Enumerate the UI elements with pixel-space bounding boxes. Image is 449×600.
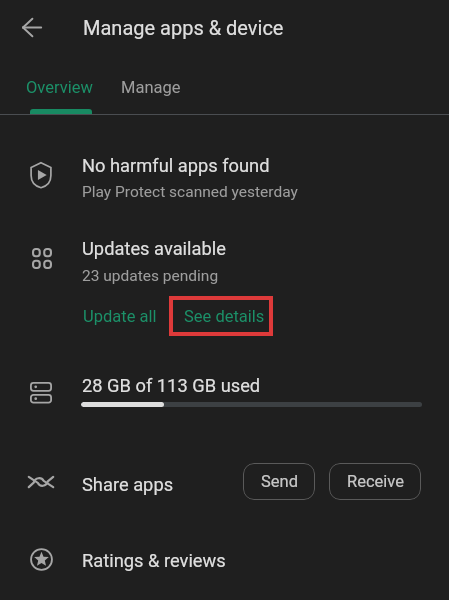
staticText: Share apps bbox=[82, 474, 174, 495]
staticText: Update all bbox=[83, 307, 157, 326]
button[interactable]: Update all bbox=[69, 296, 171, 336]
button[interactable]: Navigate up bbox=[8, 3, 56, 51]
staticText: Updates available bbox=[82, 238, 226, 259]
staticText: 28 GB of 113 GB used bbox=[82, 375, 261, 396]
staticText: Manage bbox=[121, 78, 181, 97]
staticText: Manage apps & device bbox=[83, 16, 284, 39]
staticText: Ratings & reviews bbox=[82, 550, 226, 571]
button[interactable]: Share apps bbox=[0, 450, 449, 512]
button[interactable]: 28 GB of 113 GB used bbox=[0, 355, 449, 425]
button[interactable]: Manage bbox=[104, 60, 198, 115]
staticText: Receive bbox=[347, 472, 404, 491]
staticText: Play Protect scanned yesterday bbox=[82, 183, 298, 201]
staticText: Overview bbox=[26, 78, 93, 97]
staticText: Send bbox=[261, 472, 298, 491]
button[interactable]: Send bbox=[243, 463, 315, 500]
button[interactable]: No harmful apps found bbox=[0, 135, 449, 215]
button[interactable]: Overview bbox=[6, 60, 112, 115]
button[interactable]: Updates available bbox=[0, 225, 449, 295]
button[interactable]: See details bbox=[169, 296, 273, 336]
button[interactable]: Ratings & reviews bbox=[0, 530, 449, 592]
staticText: No harmful apps found bbox=[82, 155, 270, 176]
button[interactable]: Receive bbox=[329, 463, 421, 500]
staticText: See details bbox=[184, 307, 265, 326]
staticText: 23 updates pending bbox=[82, 267, 219, 285]
